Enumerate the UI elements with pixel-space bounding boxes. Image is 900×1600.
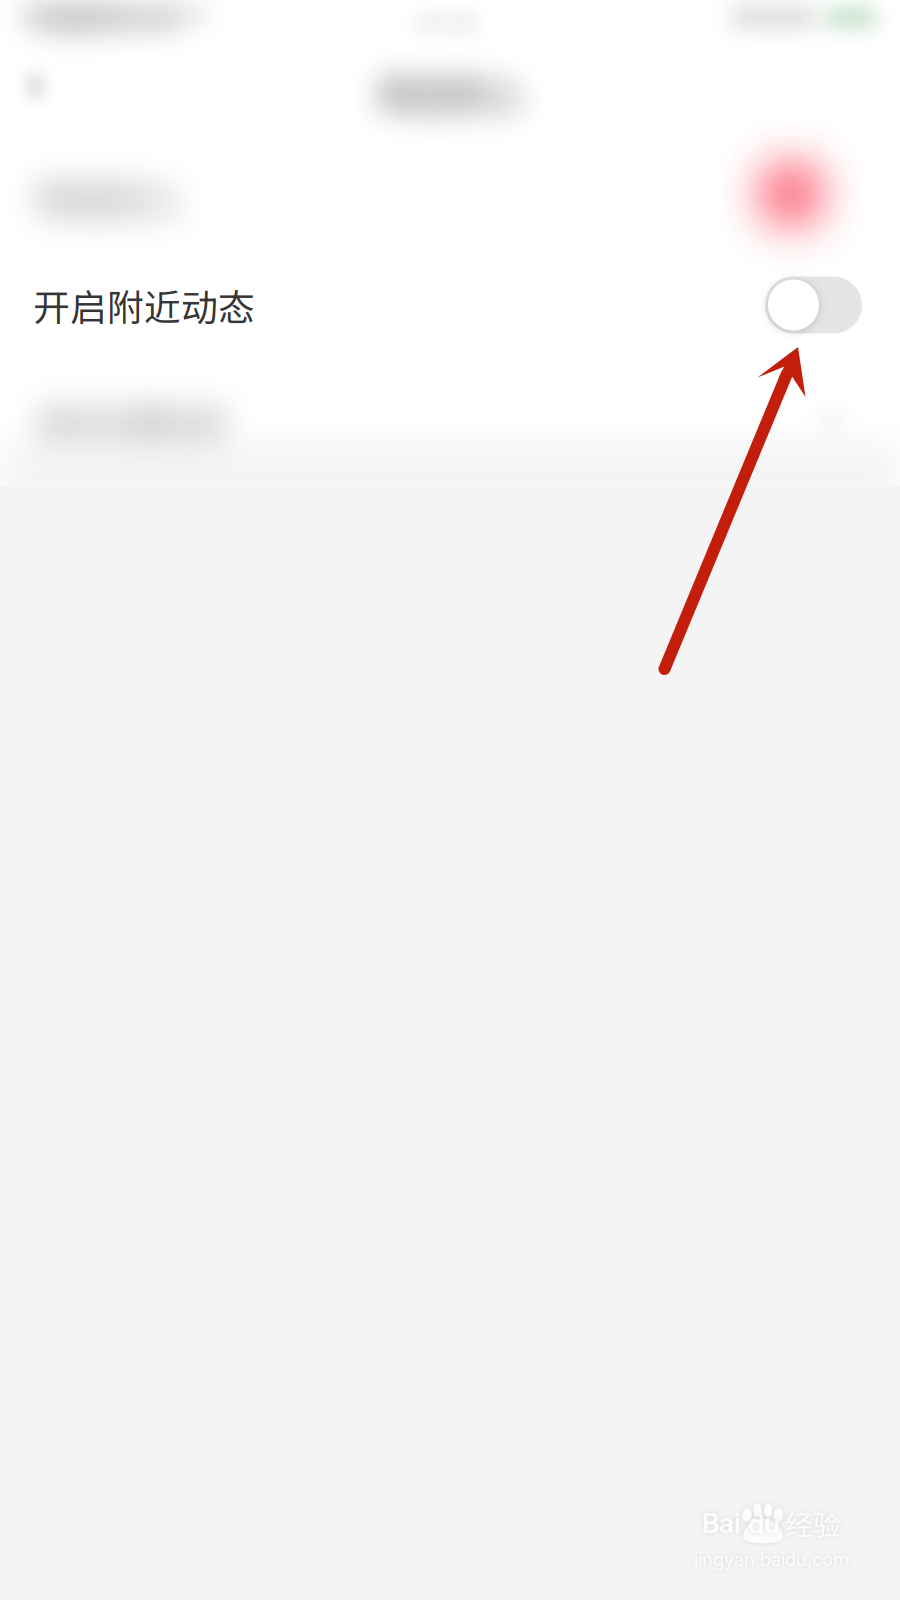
staticText: Bai (702, 1507, 741, 1539)
button[interactable]: 开启附近动态 (0, 249, 900, 361)
staticText: du (748, 1508, 780, 1540)
staticText: jingyan.baidu.com (694, 1548, 849, 1570)
staticText: 经验 (785, 1503, 841, 1543)
button[interactable]: 附近的人 (0, 137, 900, 249)
button[interactable]: 清空位置信息 (0, 361, 900, 473)
button[interactable]: 返回 (0, 42, 92, 130)
staticText: 开启附近动态 (33, 278, 255, 332)
